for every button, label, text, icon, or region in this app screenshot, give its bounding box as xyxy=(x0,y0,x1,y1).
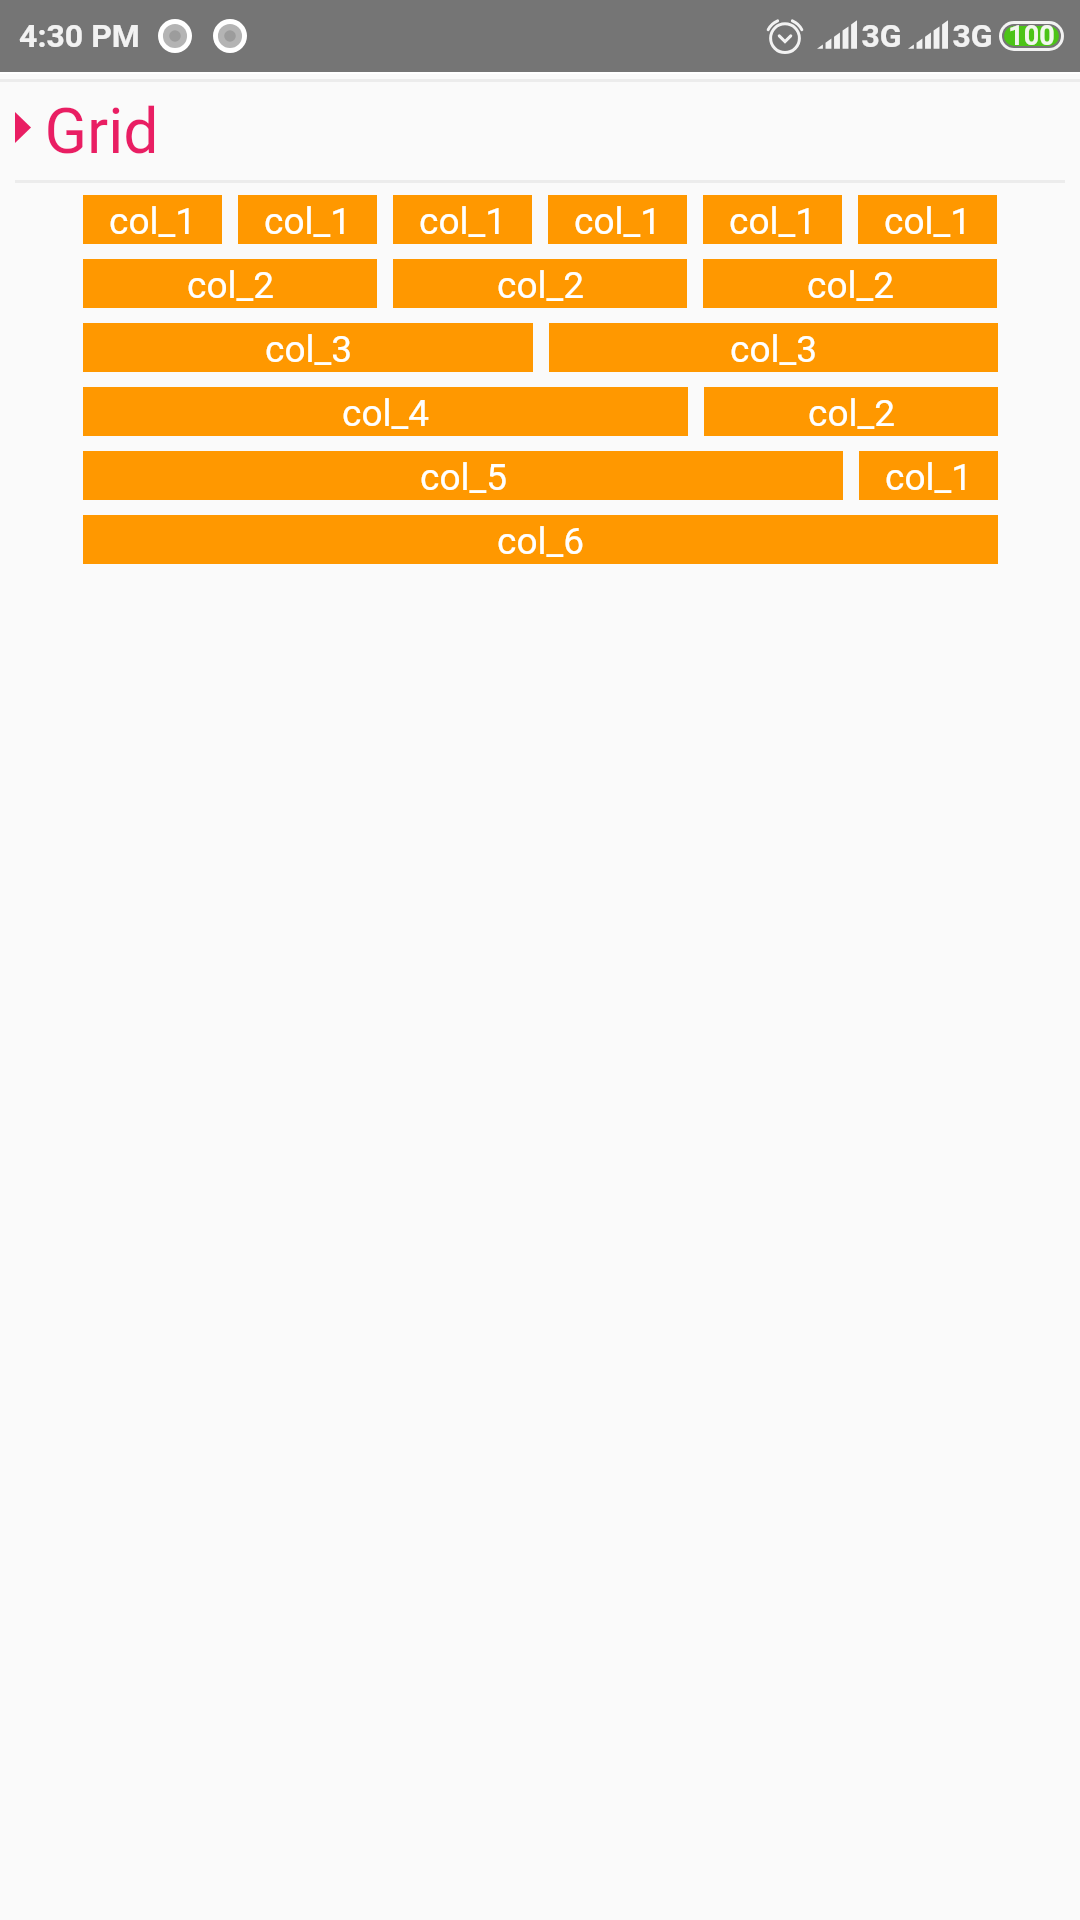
staticText: col_1 xyxy=(419,200,506,243)
button[interactable]: col_1 xyxy=(548,195,687,244)
staticText: col_1 xyxy=(264,200,351,243)
staticText: col_1 xyxy=(574,200,661,243)
button[interactable]: col_2 xyxy=(393,259,687,308)
staticText: 3G xyxy=(861,17,902,55)
staticText: col_2 xyxy=(807,264,894,307)
other: Indicator xyxy=(213,19,247,53)
button[interactable]: col_1 xyxy=(859,451,998,500)
staticText: col_4 xyxy=(342,392,429,435)
staticText: col_1 xyxy=(884,200,971,243)
button[interactable]: col_1 xyxy=(238,195,377,244)
staticText: col_6 xyxy=(497,520,584,563)
other: Indicator xyxy=(158,19,192,53)
staticText: col_1 xyxy=(885,456,972,499)
button[interactable]: col_2 xyxy=(83,259,377,308)
staticText: col_3 xyxy=(730,328,817,371)
staticText: col_2 xyxy=(187,264,274,307)
staticText: 3G xyxy=(952,17,993,55)
button[interactable]: Grid xyxy=(0,82,1080,160)
button[interactable]: col_3 xyxy=(83,323,533,372)
button[interactable]: col_1 xyxy=(858,195,997,244)
staticText: col_2 xyxy=(808,392,895,435)
button[interactable]: col_1 xyxy=(393,195,532,244)
staticText: 4:30 PM xyxy=(19,17,140,55)
staticText: col_1 xyxy=(729,200,816,243)
button[interactable]: col_1 xyxy=(83,195,222,244)
other: Battery 100 percent xyxy=(999,21,1064,51)
staticText: col_1 xyxy=(109,200,196,243)
staticText: col_3 xyxy=(265,328,352,371)
button[interactable]: col_3 xyxy=(549,323,998,372)
button[interactable]: col_5 xyxy=(83,451,843,500)
staticText: col_2 xyxy=(497,264,584,307)
staticText: Grid xyxy=(44,95,159,160)
button[interactable]: col_2 xyxy=(703,259,997,308)
other: Alarm set xyxy=(767,18,803,54)
button[interactable]: col_6 xyxy=(83,515,998,564)
button[interactable]: col_2 xyxy=(704,387,998,436)
other: Signal strength xyxy=(908,19,948,53)
button[interactable]: col_1 xyxy=(703,195,842,244)
staticText: 100 xyxy=(1008,20,1055,50)
staticText: col_5 xyxy=(420,456,507,499)
other: Signal strength xyxy=(817,19,857,53)
button[interactable]: col_4 xyxy=(83,387,688,436)
